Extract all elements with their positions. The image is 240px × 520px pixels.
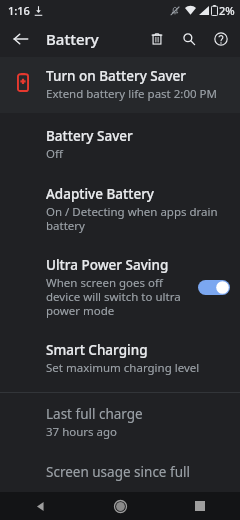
button[interactable]: Ultra Power Saving bbox=[0, 243, 240, 328]
button[interactable]: Smart Charging bbox=[0, 328, 240, 388]
staticText: 1:16 bbox=[8, 3, 30, 18]
button[interactable]: Search bbox=[176, 26, 202, 52]
staticText: When screen goes off device will switch … bbox=[46, 275, 188, 318]
staticText: Extend battery life past 2:00 PM bbox=[46, 86, 217, 102]
staticText: Last full charge bbox=[46, 405, 143, 423]
staticText: Battery Saver bbox=[46, 127, 133, 145]
button[interactable]: Back bbox=[8, 26, 34, 52]
button[interactable]: Screen usage since full charge bbox=[0, 450, 240, 492]
button[interactable]: Turn on Battery Saver bbox=[0, 57, 240, 113]
button[interactable]: Delete bbox=[144, 26, 170, 52]
staticText: Adaptive Battery bbox=[46, 185, 154, 203]
staticText: Turn on Battery Saver bbox=[46, 67, 186, 85]
button[interactable]: Battery Saver bbox=[0, 113, 240, 172]
staticText: On / Detecting when apps drain battery bbox=[46, 204, 226, 233]
button[interactable]: Recent apps bbox=[160, 492, 240, 520]
staticText: Battery bbox=[46, 29, 99, 49]
button[interactable]: Home bbox=[80, 492, 160, 520]
staticText: Ultra Power Saving bbox=[46, 256, 169, 274]
staticText: 2% bbox=[219, 3, 235, 18]
staticText: Off bbox=[46, 146, 63, 162]
staticText: 37 hours ago bbox=[46, 424, 118, 440]
staticText: Screen usage since full charge bbox=[46, 463, 226, 482]
staticText: Smart Charging bbox=[46, 341, 148, 359]
button[interactable]: Ultra Power Saving toggle bbox=[196, 276, 232, 298]
button[interactable]: Last full charge bbox=[0, 393, 240, 450]
button[interactable]: Back bbox=[0, 492, 80, 520]
button[interactable]: Help bbox=[208, 26, 234, 52]
button[interactable]: Adaptive Battery bbox=[0, 172, 240, 243]
staticText: Set maximum charging level bbox=[46, 360, 200, 376]
